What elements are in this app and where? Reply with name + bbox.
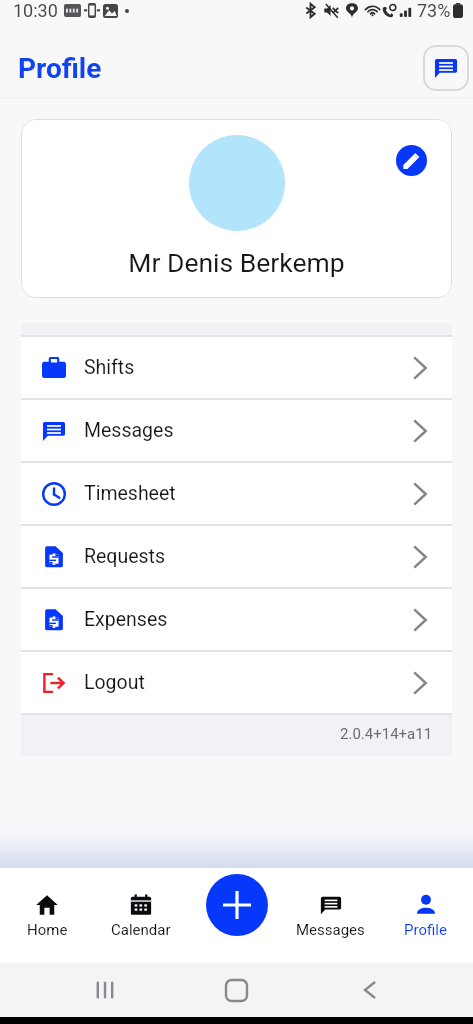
button[interactable]: Back (363, 980, 377, 1000)
staticText: 10:30 (13, 0, 58, 21)
button[interactable]: Add (206, 874, 268, 936)
button[interactable]: Messages (283, 894, 378, 939)
button[interactable]: Timesheet (21, 463, 452, 524)
staticText: Timesheet (84, 482, 176, 505)
button[interactable]: Profile (378, 894, 473, 939)
staticText: Profile (18, 52, 102, 85)
staticText: Messages (296, 921, 365, 939)
staticText: Expenses (84, 608, 168, 631)
staticText: Mr Denis Berkemp (128, 247, 345, 278)
staticText: Shifts (84, 356, 135, 379)
button[interactable]: Requests (21, 526, 452, 587)
button[interactable]: Messages (423, 45, 469, 91)
staticText: 2.0.4+14+a11 (340, 725, 433, 743)
staticText: Messages (84, 419, 174, 442)
staticText: 73% (417, 0, 451, 21)
button[interactable]: Shifts (21, 337, 452, 398)
button[interactable]: Home (226, 980, 247, 1001)
staticText: Home (27, 921, 68, 939)
button[interactable]: Messages (21, 400, 452, 461)
button[interactable]: Recents (96, 981, 114, 999)
staticText: Calendar (111, 921, 171, 939)
staticText: Logout (84, 671, 145, 694)
staticText: Profile (404, 921, 447, 939)
button[interactable]: Calendar (94, 894, 188, 939)
button[interactable]: Logout (21, 652, 452, 713)
button[interactable]: Edit profile (396, 145, 427, 176)
staticText: Requests (84, 545, 166, 568)
button[interactable]: Expenses (21, 589, 452, 650)
button[interactable]: Home (0, 894, 94, 939)
